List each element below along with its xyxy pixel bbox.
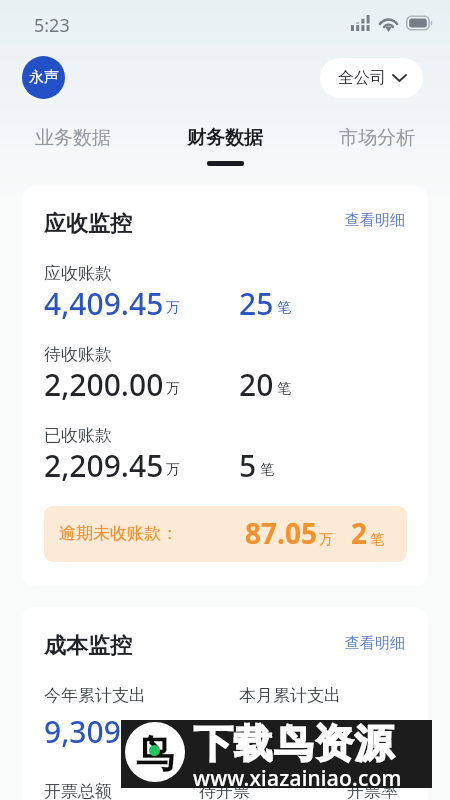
staticText: 5:23 bbox=[34, 13, 70, 38]
staticText: 鸟 bbox=[136, 730, 174, 778]
staticText: 25 bbox=[239, 283, 274, 324]
staticText: 查看明细 bbox=[345, 211, 405, 230]
button[interactable]: 永声 bbox=[22, 56, 65, 99]
button[interactable]: 查看明细 bbox=[345, 634, 405, 653]
staticText: 本月累计支出 bbox=[239, 685, 341, 706]
button[interactable]: 全公司 bbox=[320, 58, 423, 98]
staticText: 万 bbox=[166, 380, 180, 398]
staticText: 笔 bbox=[277, 299, 291, 317]
button[interactable]: 查看明细 bbox=[345, 211, 405, 230]
staticText: 业务数据 bbox=[35, 126, 111, 150]
staticText: 20 bbox=[239, 364, 274, 405]
staticText: 9,309 bbox=[44, 711, 121, 752]
staticText: 万 bbox=[318, 731, 332, 749]
staticText: 已收账款 bbox=[44, 425, 112, 446]
staticText: 永声 bbox=[29, 68, 59, 87]
staticText: 查看明细 bbox=[345, 634, 405, 653]
staticText: 逾期未收账款： bbox=[59, 523, 178, 544]
staticText: 应收账款 bbox=[44, 263, 112, 284]
button[interactable]: 市场分析 bbox=[318, 126, 436, 178]
staticText: 万 bbox=[166, 461, 180, 479]
staticText: 待收账款 bbox=[44, 344, 112, 365]
staticText: 应收监控 bbox=[44, 210, 132, 238]
staticText: 今年累计支出 bbox=[44, 685, 146, 706]
staticText: 成本监控 bbox=[44, 632, 132, 660]
button[interactable]: 业务数据 bbox=[14, 126, 132, 178]
button[interactable]: 财务数据 bbox=[171, 126, 279, 178]
staticText: 开票总额 bbox=[44, 781, 112, 800]
staticText: 市场分析 bbox=[339, 126, 415, 150]
staticText: 万 bbox=[123, 731, 137, 749]
staticText: 87.05 bbox=[245, 514, 317, 552]
staticText: 4,409.45 bbox=[44, 283, 164, 324]
staticText: 万 bbox=[319, 531, 333, 549]
staticText: 1,200 bbox=[239, 711, 316, 752]
staticText: 2,200.00 bbox=[44, 364, 164, 405]
staticText: 笔 bbox=[277, 380, 291, 398]
staticText: 开票率 bbox=[347, 781, 398, 800]
staticText: 5 bbox=[239, 445, 257, 486]
staticText: 下载鸟资源 bbox=[193, 719, 394, 768]
staticText: 财务数据 bbox=[187, 126, 263, 150]
staticText: www.xiazainiao.com bbox=[193, 764, 402, 793]
staticText: 全公司 bbox=[338, 68, 386, 88]
staticText: 2 bbox=[351, 514, 368, 552]
staticText: 笔 bbox=[370, 531, 384, 549]
staticText: 2,209.45 bbox=[44, 445, 164, 486]
staticText: 万 bbox=[166, 299, 180, 317]
staticText: 笔 bbox=[260, 461, 274, 479]
button[interactable]: 逾期未收账款： bbox=[44, 506, 407, 562]
staticText: 待开票 bbox=[199, 781, 250, 800]
